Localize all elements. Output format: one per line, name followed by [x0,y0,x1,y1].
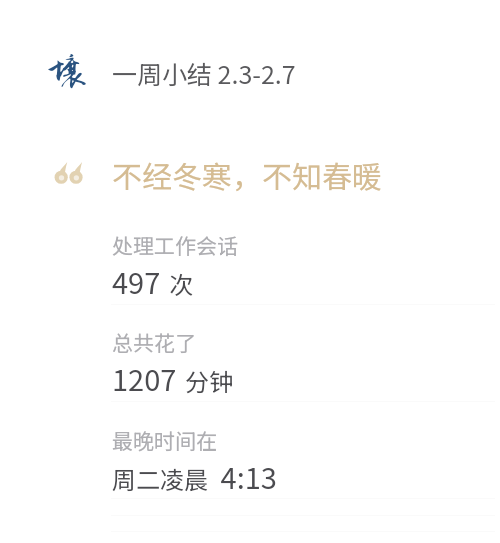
staticText: 处理工作会话 [112,230,238,260]
button[interactable]: 一周小结 2.3-2.7 [112,48,312,88]
staticText: 总共花了 [112,327,196,357]
staticText: 1207 分钟 [112,357,234,399]
other: Quote [56,160,84,184]
button[interactable]: 最晚时间在 [111,417,495,499]
staticText: 一周小结 2.3-2.7 [112,55,296,91]
staticText: 不经冬寒，不知春暖 [112,153,382,196]
staticText: 497 次 [112,260,194,302]
button[interactable]: App logo [40,44,104,106]
button[interactable]: 总共花了 [111,319,495,401]
button[interactable]: 处理工作会话 [111,222,495,304]
staticText: 壤 [49,52,85,92]
staticText: 周二凌晨 4:13 [112,455,277,497]
staticText: 最晚时间在 [112,425,217,455]
